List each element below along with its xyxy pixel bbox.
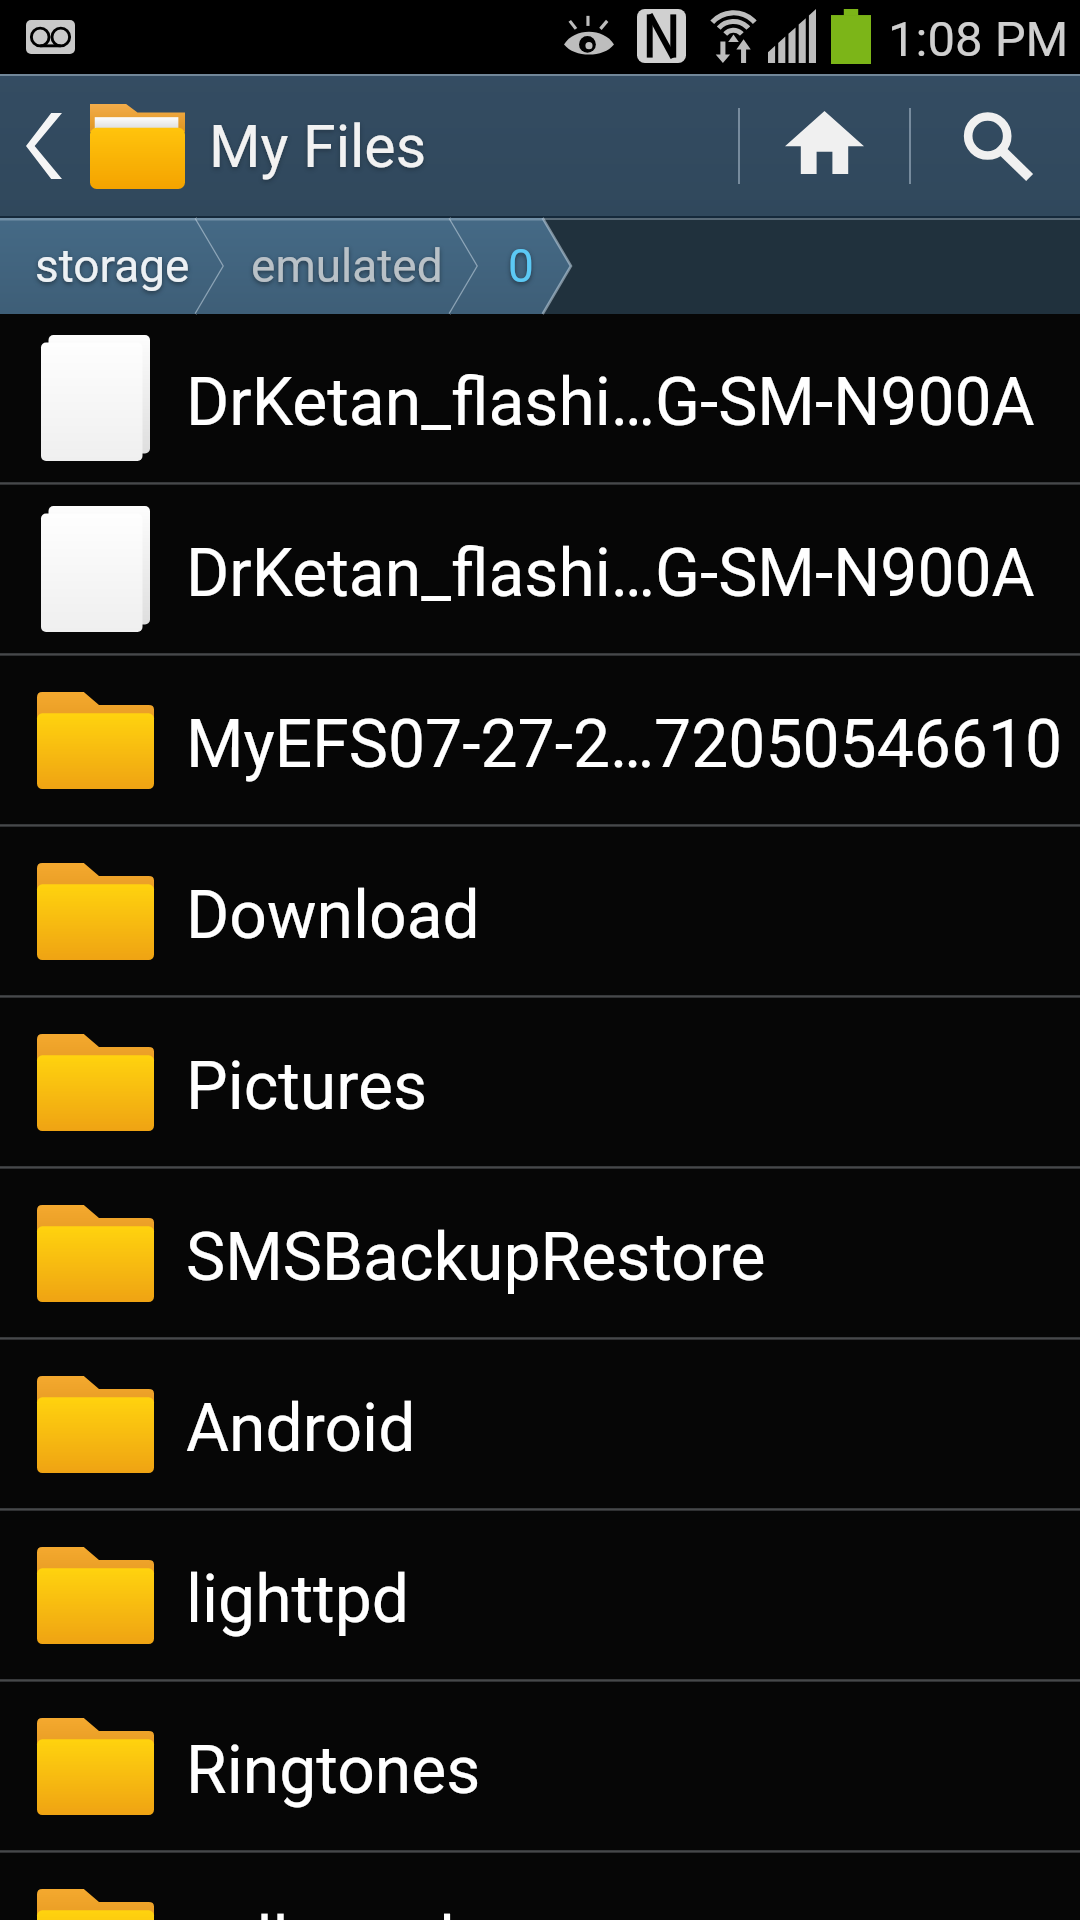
staticText: 0: [508, 239, 534, 293]
staticText: SMSBackupRestore: [186, 1219, 766, 1296]
button[interactable]: 0: [478, 218, 571, 314]
button[interactable]: Download: [0, 827, 1080, 998]
button[interactable]: DrKetan_flashi…G-SM-N900A: [0, 314, 1080, 485]
staticText: emulated: [251, 239, 443, 293]
button[interactable]: storage: [0, 218, 224, 314]
button[interactable]: SMSBackupRestore: [0, 1169, 1080, 1340]
staticText: DrKetan_flashi…G-SM-N900A: [186, 364, 1035, 441]
staticText: callecord: [186, 1903, 455, 1920]
staticText: Android: [186, 1390, 416, 1467]
staticText: Download: [186, 877, 480, 954]
button[interactable]: Pictures: [0, 998, 1080, 1169]
staticText: My Files: [209, 112, 427, 181]
button[interactable]: DrKetan_flashi…G-SM-N900A: [0, 485, 1080, 656]
other: Back: [26, 113, 62, 179]
button[interactable]: Android: [0, 1340, 1080, 1511]
button[interactable]: Back: [0, 74, 427, 218]
button[interactable]: Home: [740, 74, 909, 218]
staticText: lighttpd: [186, 1561, 409, 1638]
staticText: Pictures: [186, 1048, 428, 1125]
staticText: MyEFS07-27-2…72050546610: [186, 706, 1063, 783]
button[interactable]: MyEFS07-27-2…72050546610: [0, 656, 1080, 827]
button[interactable]: emulated: [224, 218, 478, 314]
staticText: Ringtones: [186, 1732, 481, 1809]
staticText: storage: [35, 239, 190, 293]
staticText: DrKetan_flashi…G-SM-N900A: [186, 535, 1035, 612]
button[interactable]: Ringtones: [0, 1682, 1080, 1853]
other: Voicemail: [26, 20, 75, 54]
staticText: 1:08 PM: [888, 11, 1069, 68]
button[interactable]: lighttpd: [0, 1511, 1080, 1682]
button[interactable]: callecord: [0, 1853, 1080, 1920]
button[interactable]: Search: [911, 74, 1080, 218]
